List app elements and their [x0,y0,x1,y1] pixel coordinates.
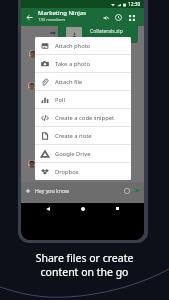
button[interactable]: Back [21,9,38,26]
staticText: Google Drive [55,150,91,158]
staticText: Collaterals.zip [90,28,123,35]
staticText: Hey you know [35,187,70,194]
staticText: Attach photo [55,42,91,50]
button[interactable]: Group info [112,11,125,24]
button[interactable]: Recent apps [113,204,122,213]
button[interactable]: Send [133,186,142,195]
button[interactable]: Attach photo [35,37,131,54]
staticText: Poll [55,96,66,104]
staticText: Create a note [55,132,92,140]
button[interactable]: Create a code snippet [35,109,131,126]
button[interactable]: Emoji [122,186,131,195]
button[interactable]: Create a note [35,127,131,144]
staticText: Attach file [55,78,83,86]
staticText: 133 members [38,17,66,23]
button[interactable]: Poll [35,91,131,108]
staticText: Dropbox [55,168,79,176]
staticText: Marketing Ninjas [38,9,87,17]
button[interactable]: Google Drive [35,145,131,162]
staticText: Create a code snippet [55,114,115,122]
button[interactable]: Mute notifications [99,11,112,24]
button[interactable]: Attach [23,186,32,195]
button[interactable]: Take a photo [35,55,131,72]
button[interactable]: Attach file [35,73,131,90]
button[interactable]: Home [78,204,87,213]
staticText: 12:30 [128,1,141,8]
staticText: Take a photo [55,60,90,68]
staticText: Share files or create content on the go [0,251,169,279]
button[interactable]: Dropbox [35,163,131,180]
button[interactable]: Apps [125,11,138,24]
button[interactable]: Back [43,204,52,213]
